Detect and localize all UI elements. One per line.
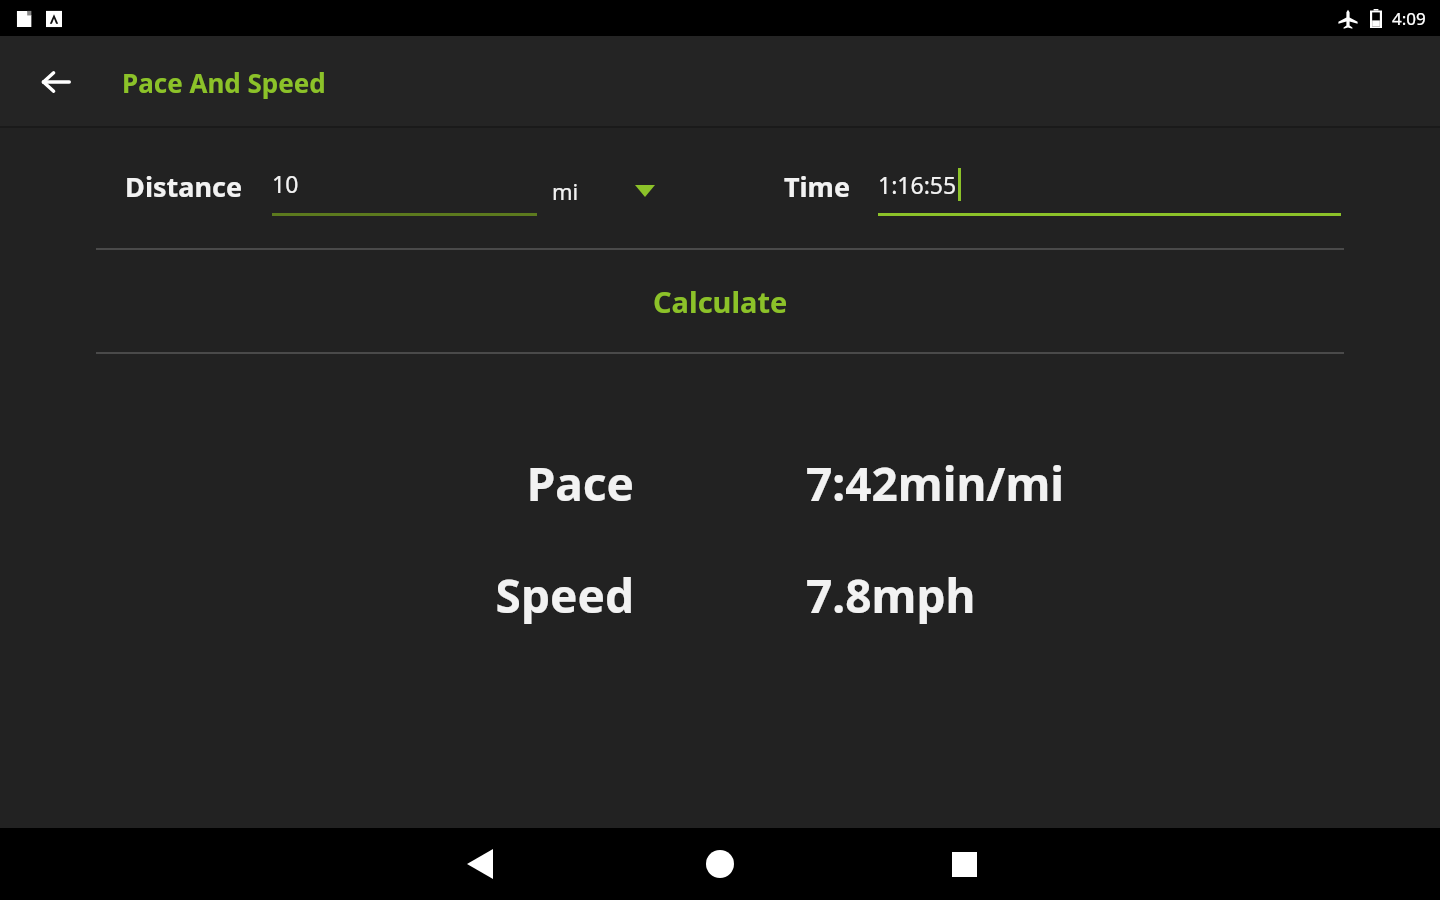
staticText: Speed xyxy=(495,564,634,627)
staticText: Calculate xyxy=(653,282,788,321)
staticText: 7.8mph xyxy=(806,564,976,627)
button[interactable]: Back xyxy=(26,53,84,111)
button[interactable]: Recent apps xyxy=(928,828,1000,900)
staticText: mi xyxy=(552,176,579,206)
staticText: Pace xyxy=(526,452,634,515)
button[interactable]: mi xyxy=(552,168,655,214)
staticText: 7:42min/mi xyxy=(806,452,1065,515)
button[interactable]: Home xyxy=(684,828,756,900)
button[interactable]: 1:16:55 xyxy=(878,160,1341,216)
staticText: Distance xyxy=(125,168,242,205)
staticText: 10 xyxy=(272,168,299,199)
staticText: 1:16:55 xyxy=(878,169,957,200)
staticText: 4:09 xyxy=(1392,7,1426,30)
button[interactable]: Back xyxy=(444,828,516,900)
button[interactable]: Calculate xyxy=(0,253,1440,349)
staticText: Pace And Speed xyxy=(122,65,326,100)
button[interactable]: 10 xyxy=(272,160,537,216)
staticText: Time xyxy=(783,168,850,205)
